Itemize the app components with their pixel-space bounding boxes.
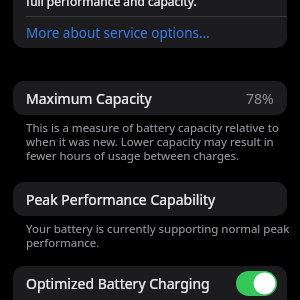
button[interactable]: Maximum Capacity (13, 81, 287, 115)
button[interactable]: More about service options… (13, 17, 287, 48)
staticText: Maximum Capacity (26, 89, 152, 108)
staticText: More about service options… (26, 24, 210, 42)
staticText: Peak Performance Capability (26, 190, 216, 209)
staticText: Optimized Battery Charging (26, 274, 210, 293)
staticText: Your battery is currently supporting nor… (26, 221, 290, 250)
button[interactable]: Peak Performance Capability (13, 182, 287, 216)
staticText: full performance and capacity. (26, 0, 197, 9)
staticText: This is a measure of battery capacity re… (26, 120, 279, 163)
button[interactable]: Optimized Battery Charging (13, 266, 287, 300)
button[interactable]: Optimized Battery Charging toggle (236, 271, 277, 296)
staticText: 78% (246, 89, 274, 108)
